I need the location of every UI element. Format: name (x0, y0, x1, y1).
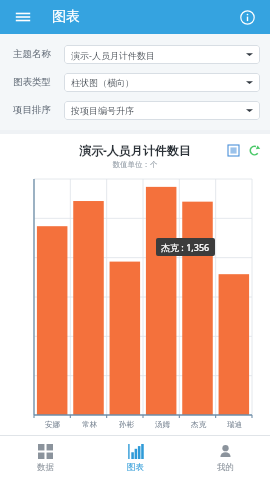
button[interactable]: 项目排序 (0, 96, 270, 124)
staticText: 主题名称 (13, 48, 51, 60)
staticText: 常林 (82, 420, 97, 429)
staticText: 演示-人员月计件数目 (71, 49, 155, 61)
button[interactable]: Table view (225, 142, 241, 158)
staticText: 我的 (217, 462, 234, 473)
staticText: 演示-人员月计件数目 (79, 142, 191, 158)
button[interactable]: 主题名称 (0, 40, 270, 68)
staticText: 安娜 (45, 420, 60, 429)
staticText: 数据 (37, 462, 54, 473)
button[interactable]: Menu (10, 4, 36, 30)
staticText: 图表类型 (13, 76, 51, 88)
staticText: 项目排序 (13, 104, 51, 116)
staticText: 数值单位：个 (0, 160, 270, 169)
button[interactable]: 数据 (0, 436, 90, 481)
staticText: 图表 (52, 8, 80, 26)
button[interactable]: 图表 (90, 436, 180, 481)
button[interactable]: 图表类型 (0, 68, 270, 96)
staticText: 孙彬 (119, 420, 134, 429)
staticText: 柱状图（横向） (71, 77, 134, 88)
staticText: 瑞迪 (227, 420, 242, 429)
button[interactable]: Refresh (246, 142, 262, 158)
staticText: 汤姆 (155, 420, 170, 429)
button[interactable]: 我的 (180, 436, 270, 481)
staticText: 图表 (127, 462, 144, 473)
button[interactable]: Info (234, 4, 260, 30)
staticText: 杰克 (191, 420, 206, 429)
staticText: 杰克 : 1,356 (161, 241, 210, 253)
staticText: 按项目编号升序 (71, 105, 134, 116)
